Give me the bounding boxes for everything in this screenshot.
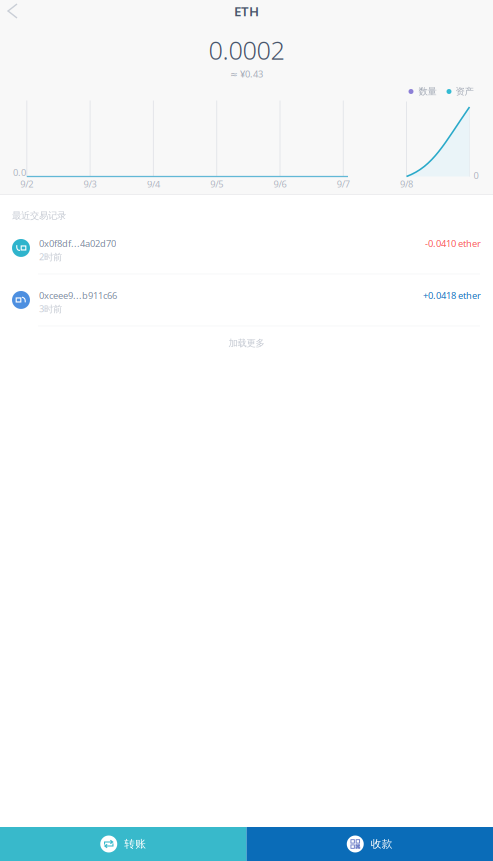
staticText: 0.0002 [208,33,284,67]
staticText: 2时前 [39,250,62,263]
staticText: 加载更多 [228,337,264,349]
staticText: 9/5 [210,178,223,190]
staticText: 0x0f8df...4a02d70 [39,237,116,249]
staticText: 0 [473,169,478,182]
staticText: 9/6 [273,178,286,190]
staticText: 9/2 [20,178,33,190]
staticText: 收款 [371,837,393,850]
button[interactable]: 收款 [246,827,493,861]
staticText: 资产 [455,86,473,97]
staticText: 9/8 [400,178,413,190]
button[interactable]: 加载更多 [0,326,493,360]
staticText: ≈ ¥0.43 [230,68,263,80]
button[interactable]: 转账 [0,827,246,861]
staticText: 9/7 [337,178,350,190]
staticText: 0xceee9...b911c66 [39,289,117,301]
staticText: 转账 [124,837,146,850]
staticText: 3时前 [39,302,62,315]
staticText: 数量 [418,86,436,97]
staticText: 9/3 [84,178,97,190]
button[interactable]: 0x0f8df...4a02d70 [0,222,493,273]
staticText: 9/4 [147,178,160,190]
button[interactable]: Back [0,0,35,23]
button[interactable]: 0xceee9...b911c66 [0,274,493,325]
staticText: +0.0418 ether [423,289,481,302]
staticText: ETH [234,2,259,20]
staticText: 0.0 [13,166,26,179]
staticText: -0.0410 ether [425,237,481,250]
staticText: 最近交易记录 [12,210,66,221]
